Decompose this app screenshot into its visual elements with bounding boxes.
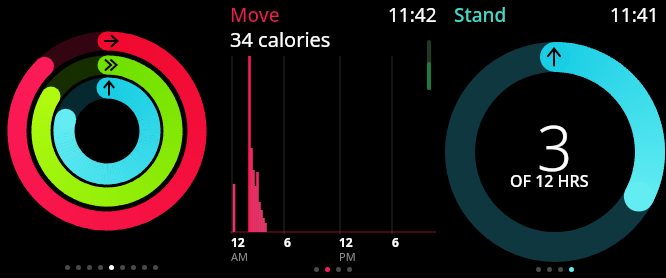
staticText: OF 12 HRS	[510, 170, 589, 192]
staticText: Move	[230, 2, 280, 28]
staticText: 12	[339, 234, 353, 250]
staticText: 6	[392, 234, 399, 250]
button[interactable]: Move	[222, 0, 444, 278]
staticText: 11:41	[610, 2, 659, 28]
staticText: 3	[537, 105, 573, 189]
staticText: 12	[231, 234, 245, 250]
staticText: 6	[284, 234, 291, 250]
button[interactable]: Stand	[444, 0, 666, 278]
staticText: 11:42	[388, 2, 437, 28]
staticText: Stand	[454, 2, 507, 28]
staticText: AM	[231, 249, 249, 264]
staticText: 34 calories	[230, 26, 331, 53]
button[interactable]: Activity rings	[0, 0, 222, 278]
staticText: PM	[339, 249, 356, 264]
